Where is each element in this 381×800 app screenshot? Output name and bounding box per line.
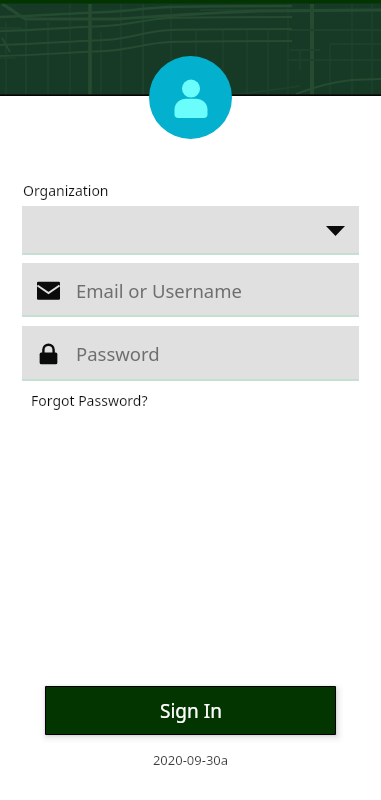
button[interactable]: Forgot Password?: [31, 391, 148, 410]
staticText: Password: [76, 341, 160, 366]
staticText: Organization: [23, 181, 109, 200]
button[interactable]: Profile avatar: [149, 56, 232, 139]
button[interactable]: Organization: [22, 206, 359, 255]
staticText: Email or Username: [76, 278, 242, 303]
button[interactable]: Password: [22, 326, 359, 381]
button[interactable]: Sign In: [46, 687, 335, 734]
staticText: Sign In: [160, 698, 222, 724]
staticText: 2020-09-30a: [0, 751, 381, 769]
button[interactable]: Email or Username: [22, 263, 359, 317]
